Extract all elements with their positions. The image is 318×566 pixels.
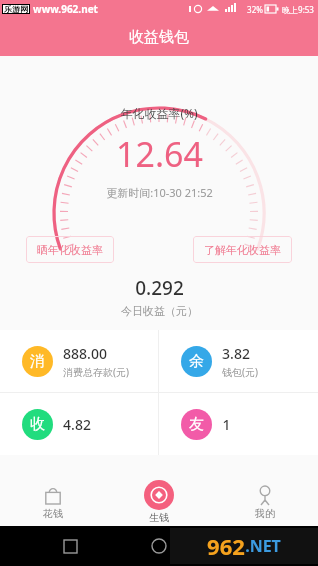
button[interactable]: 了解年化收益率: [193, 236, 292, 263]
staticText: 3.82: [222, 344, 250, 363]
button[interactable]: 友: [159, 393, 318, 455]
staticText: 花钱: [43, 507, 63, 520]
staticText: 生钱: [149, 511, 169, 524]
staticText: 余: [189, 352, 204, 371]
button[interactable]: 晒年化收益率: [26, 236, 114, 263]
staticText: 今日收益（元）: [121, 304, 198, 318]
staticText: 32%: [247, 4, 263, 15]
staticText: 友: [189, 415, 204, 434]
staticText: 晒年化收益率: [37, 243, 103, 257]
button[interactable]: 余: [159, 330, 318, 392]
staticText: 我的: [255, 507, 275, 520]
staticText: 乐游网: [4, 4, 28, 14]
button[interactable]: Recents: [50, 526, 90, 566]
staticText: www.962.net: [33, 2, 98, 16]
staticText: 消: [30, 352, 45, 371]
button[interactable]: 收: [0, 393, 158, 455]
staticText: 1: [222, 415, 231, 434]
staticText: 钱包(元): [222, 365, 258, 379]
button[interactable]: 生钱: [106, 478, 212, 526]
button[interactable]: 消: [0, 330, 158, 392]
button[interactable]: 我的: [212, 478, 318, 526]
staticText: 更新时间:10-30 21:52: [106, 185, 213, 200]
staticText: 0.292: [135, 275, 184, 301]
staticText: 12.64: [116, 131, 203, 177]
staticText: 消费总存款(元): [63, 365, 129, 379]
staticText: 晚上9:53: [282, 4, 314, 15]
staticText: 年化收益率(%): [120, 105, 198, 121]
staticText: 收益钱包: [129, 28, 189, 47]
staticText: 888.00: [63, 344, 107, 363]
staticText: .NET: [245, 535, 281, 557]
staticText: 了解年化收益率: [204, 243, 281, 257]
staticText: 4.82: [63, 415, 91, 434]
staticText: 收: [30, 415, 45, 434]
button[interactable]: Home: [139, 526, 179, 566]
staticText: 962: [207, 531, 245, 561]
button[interactable]: 花钱: [0, 478, 106, 526]
